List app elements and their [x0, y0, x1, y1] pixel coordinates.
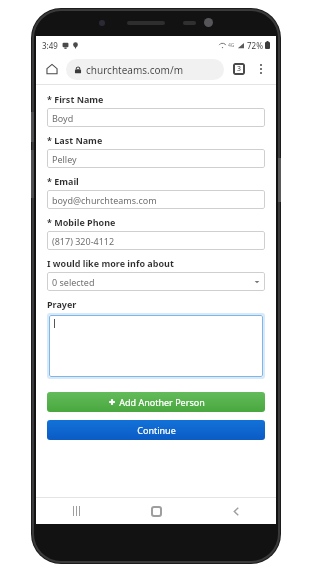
button[interactable]: Home: [116, 498, 196, 524]
staticText: Add Another Person: [119, 396, 205, 408]
button[interactable]: Continue: [47, 420, 265, 440]
button[interactable]: Recent apps: [36, 498, 116, 524]
staticText: churchteams.com/m: [86, 63, 184, 77]
staticText: Pelley: [52, 153, 77, 165]
button[interactable]: Add Another Person: [47, 392, 265, 412]
button[interactable]: Tabs: [228, 58, 250, 80]
staticText: I would like more info about: [47, 257, 174, 269]
staticText: 3:49: [42, 40, 58, 51]
button[interactable]: Boyd: [47, 108, 265, 127]
button[interactable]: More options: [251, 59, 271, 79]
staticText: Boyd: [52, 112, 74, 124]
button[interactable]: (817) 320-4112: [47, 231, 265, 250]
button[interactable]: 0 selected: [47, 272, 265, 291]
staticText: 3: [237, 64, 242, 74]
staticText: 4G: [228, 42, 235, 49]
button[interactable]: Home: [41, 58, 63, 80]
staticText: * Email: [47, 175, 79, 187]
button[interactable]: churchteams.com/m: [66, 59, 224, 80]
staticText: (817) 320-4112: [52, 235, 115, 247]
staticText: 0 selected: [52, 276, 95, 288]
staticText: 72%: [247, 40, 263, 51]
staticText: * First Name: [47, 93, 104, 105]
staticText: * Mobile Phone: [47, 216, 116, 228]
staticText: Prayer: [47, 298, 77, 310]
button[interactable]: boyd@churchteams.com: [47, 190, 265, 209]
staticText: * Last Name: [47, 134, 103, 146]
staticText: Continue: [137, 424, 176, 436]
staticText: boyd@churchteams.com: [52, 194, 157, 206]
button[interactable]: Back: [196, 498, 276, 524]
button[interactable]: Pelley: [47, 149, 265, 168]
button[interactable]: [49, 315, 263, 377]
